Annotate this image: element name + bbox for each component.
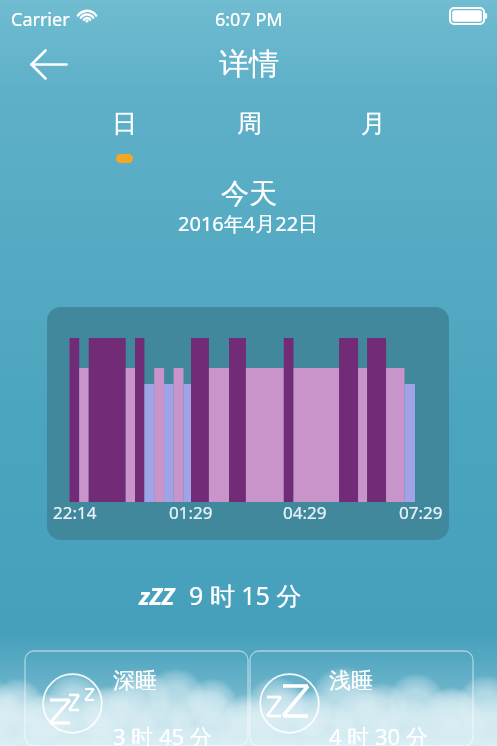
staticText: 6:07 PM: [215, 7, 283, 32]
staticText: 详情: [219, 45, 279, 83]
staticText: 07:29: [399, 501, 443, 524]
staticText: 日: [112, 108, 137, 139]
staticText: 9 时 15 分: [189, 578, 302, 612]
staticText: 深睡: [113, 667, 157, 695]
staticText: 22:14: [53, 501, 97, 524]
staticText: 周: [237, 108, 262, 139]
staticText: 今天: [221, 176, 277, 211]
staticText: zZZ: [139, 580, 175, 611]
staticText: 4 时 30 分: [329, 721, 428, 746]
staticText: 04:29: [283, 501, 327, 524]
button[interactable]: 日: [62, 103, 187, 134]
staticText: 01:29: [169, 501, 213, 524]
button[interactable]: [25, 651, 248, 746]
button[interactable]: Back: [20, 41, 78, 89]
staticText: Carrier: [11, 7, 70, 32]
staticText: 3 时 45 分: [113, 721, 212, 746]
button[interactable]: 月: [311, 103, 435, 134]
staticText: 2016年4月22日: [178, 210, 319, 237]
staticText: 浅睡: [329, 667, 373, 695]
staticText: 月: [361, 108, 386, 139]
button[interactable]: 周: [187, 103, 311, 134]
button[interactable]: [250, 651, 473, 746]
